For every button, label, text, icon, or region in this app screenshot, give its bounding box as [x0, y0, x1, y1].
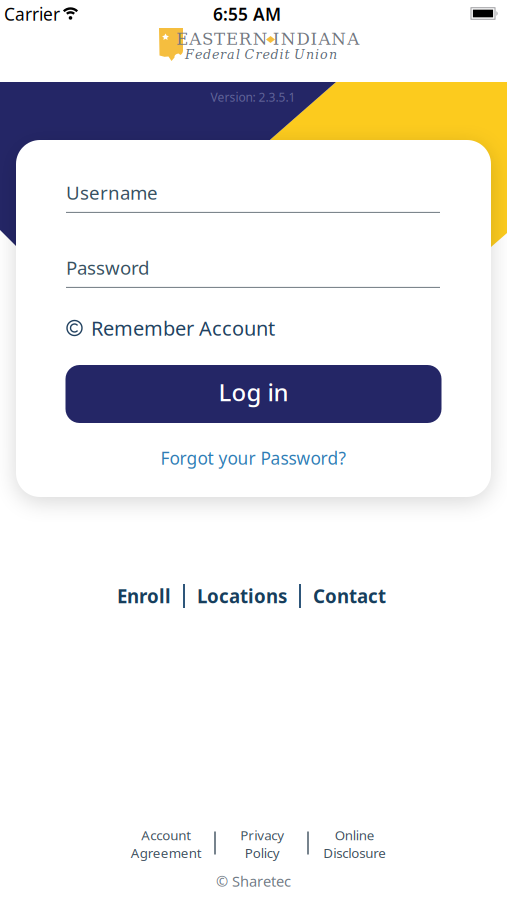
staticText: A [347, 29, 359, 49]
staticText: N [253, 29, 268, 49]
staticText: F [185, 47, 194, 62]
staticText: Online Disclosure [323, 826, 386, 862]
staticText: I [273, 29, 280, 49]
staticText: N [331, 29, 346, 49]
staticText: a [227, 47, 235, 62]
staticText: Carrier [4, 2, 60, 25]
staticText: Remember Account [91, 315, 275, 341]
button[interactable]: Contact [313, 584, 386, 608]
button[interactable]: Enroll [117, 584, 171, 608]
button[interactable]: Log in [65, 365, 441, 423]
button[interactable]: Account Agreement [130, 826, 201, 862]
staticText: l [236, 47, 240, 62]
staticText: C [244, 47, 254, 62]
staticText: Version: 2.3.5.1 [210, 89, 295, 105]
staticText: Log in [218, 376, 288, 408]
staticText: Privacy Policy [240, 826, 284, 862]
staticText: © Sharetec [216, 871, 291, 891]
staticText: A [318, 29, 330, 49]
staticText: Forgot your Password? [160, 446, 346, 469]
staticText: e [195, 47, 202, 62]
button[interactable]: Privacy Policy [240, 826, 284, 862]
staticText: U [294, 47, 305, 62]
button[interactable]: Forgot your Password? [160, 446, 346, 469]
staticText: E [226, 29, 238, 49]
staticText: Password [66, 255, 149, 280]
staticText: i [315, 47, 319, 62]
staticText: e [262, 47, 269, 62]
staticText: Enroll [117, 584, 171, 608]
button[interactable]: Remember Account [66, 315, 440, 341]
staticText: R [239, 29, 252, 49]
staticText: t [284, 47, 289, 62]
staticText: Contact [313, 584, 386, 608]
staticText: 6:55 AM [213, 2, 281, 25]
staticText: i [279, 47, 283, 62]
staticText: E [176, 29, 188, 49]
staticText: T [214, 29, 225, 49]
button[interactable]: Online Disclosure [323, 826, 386, 862]
staticText: N [281, 29, 296, 49]
staticText: Username [66, 180, 158, 205]
staticText: r [220, 47, 226, 62]
staticText: o [320, 47, 328, 62]
staticText: D [297, 29, 310, 49]
textField[interactable]: Username [66, 180, 440, 213]
staticText: Account Agreement [130, 826, 201, 862]
staticText: r [255, 47, 261, 62]
staticText: n [329, 47, 337, 62]
staticText: d [270, 47, 278, 62]
staticText: I [310, 29, 317, 49]
button[interactable]: Locations [197, 584, 287, 608]
staticText: e [212, 47, 219, 62]
staticText: d [203, 47, 211, 62]
staticText: n [306, 47, 314, 62]
staticText: Locations [197, 584, 287, 608]
staticText: A [189, 29, 201, 49]
staticText: S [202, 29, 213, 49]
secureTextField[interactable]: Password [66, 255, 440, 288]
